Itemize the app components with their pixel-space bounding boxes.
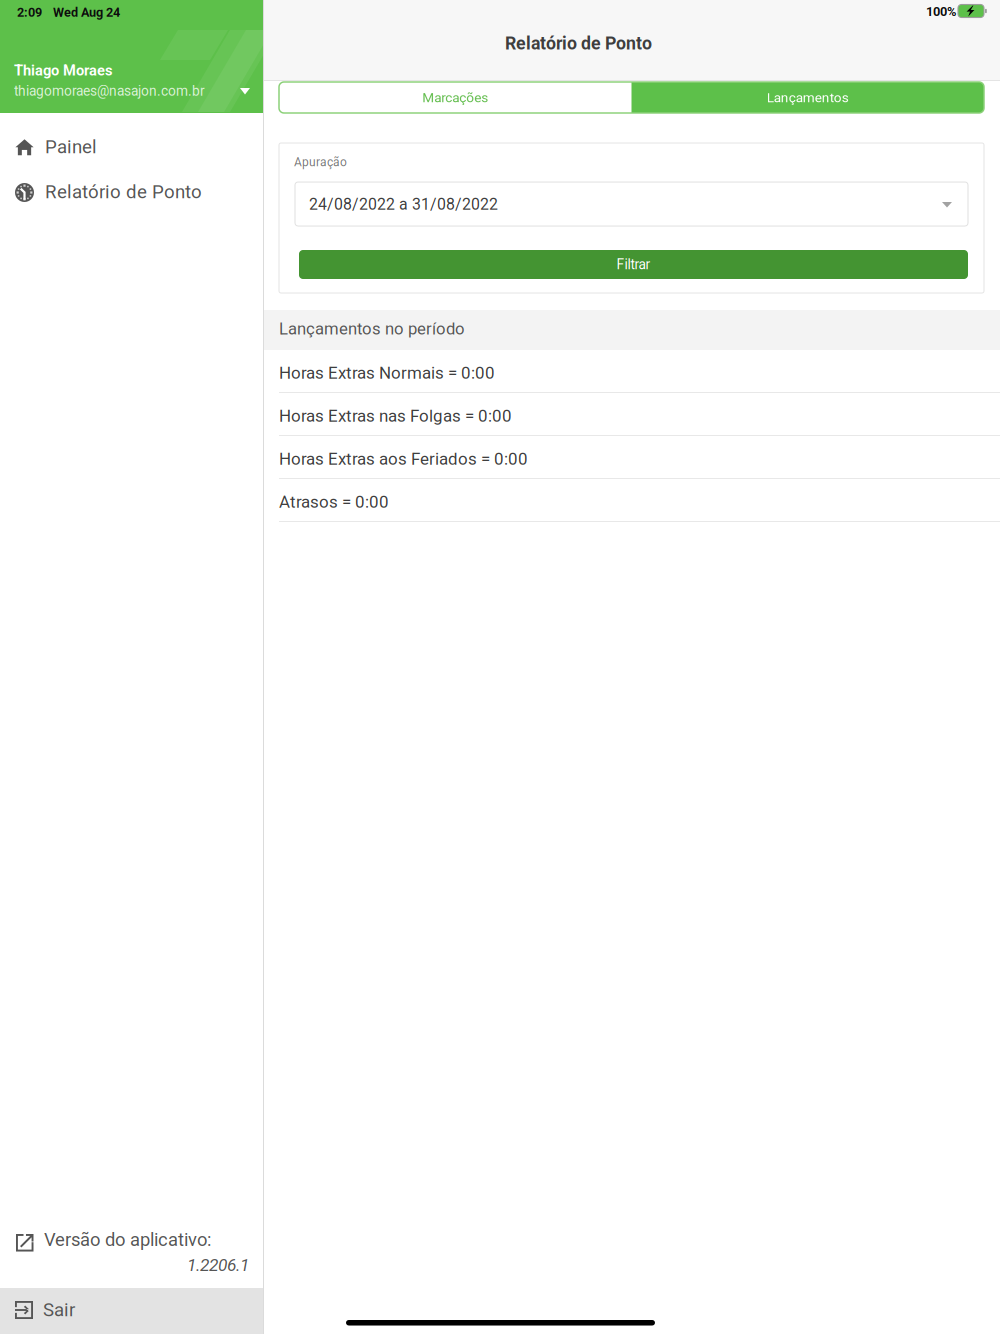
button[interactable]: Horas Extras nas Folgas = 0:00	[264, 393, 1000, 436]
staticText: Wed Aug 24	[53, 5, 120, 20]
staticText: Atrasos = 0:00	[279, 492, 389, 512]
staticText: 1.2206.1	[187, 1255, 249, 1275]
button[interactable]: Horas Extras aos Feriados = 0:00	[264, 436, 1000, 479]
button[interactable]: Marcações	[279, 82, 631, 113]
staticText: Versão do aplicativo:	[44, 1229, 211, 1251]
button[interactable]: Filtrar	[299, 250, 968, 279]
staticText: Thiago Moraes	[14, 62, 113, 79]
staticText: Horas Extras Normais = 0:00	[279, 363, 495, 383]
button[interactable]: Sair	[0, 1288, 263, 1334]
staticText: Painel	[45, 136, 97, 158]
staticText: 100%	[926, 4, 956, 19]
button[interactable]: Painel	[0, 124, 263, 170]
staticText: Marcações	[422, 89, 488, 105]
button[interactable]: Horas Extras Normais = 0:00	[264, 350, 1000, 393]
button[interactable]: Atrasos = 0:00	[264, 479, 1000, 522]
staticText: 24/08/2022 a 31/08/2022	[309, 195, 498, 214]
staticText: Filtrar	[616, 256, 650, 273]
staticText: Lançamentos no período	[279, 319, 465, 338]
button[interactable]: Lançamentos	[631, 82, 984, 113]
staticText: thiagomoraes@nasajon.com.br	[14, 83, 205, 99]
button[interactable]: 24/08/2022 a 31/08/2022	[295, 182, 968, 226]
staticText: Lançamentos	[767, 89, 849, 105]
button[interactable]: Versão do aplicativo:	[0, 1222, 263, 1286]
button[interactable]: Thiago Moraes	[0, 57, 263, 107]
staticText: Apuração	[294, 155, 347, 169]
staticText: Horas Extras aos Feriados = 0:00	[279, 449, 528, 469]
staticText: Relatório de Ponto	[505, 33, 652, 54]
staticText: Relatório de Ponto	[45, 181, 202, 203]
staticText: 2:09	[17, 5, 42, 20]
staticText: Horas Extras nas Folgas = 0:00	[279, 406, 512, 426]
button[interactable]: Relatório de Ponto	[0, 169, 263, 215]
staticText: Sair	[43, 1299, 75, 1321]
